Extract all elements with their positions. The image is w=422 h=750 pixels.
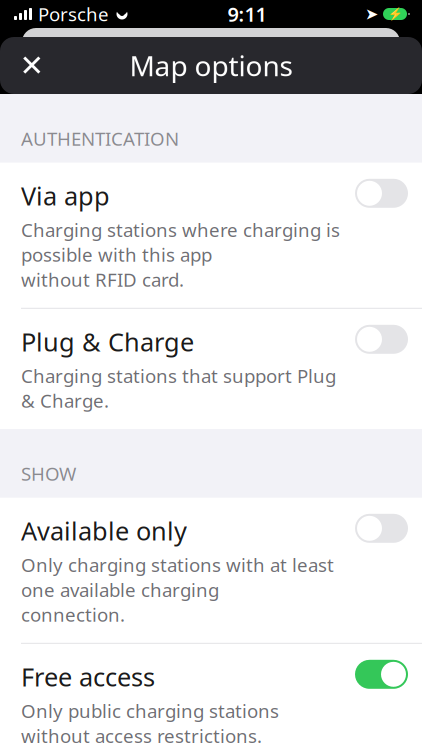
button[interactable]: Free access: [0, 643, 422, 750]
staticText: Only charging stations with at least one…: [21, 552, 334, 627]
button[interactable]: Close: [10, 43, 54, 87]
button[interactable]: Via app: [0, 163, 422, 308]
staticText: Charging stations where charging is poss…: [21, 217, 340, 292]
staticText: Only public charging stations without ac…: [21, 698, 279, 748]
staticText: Free access: [21, 660, 155, 693]
button[interactable]: Plug & Charge: [0, 308, 422, 429]
staticText: ✕: [19, 49, 44, 82]
staticText: Map options: [129, 47, 292, 84]
staticText: Available only: [21, 514, 187, 547]
staticText: AUTHENTICATION: [21, 126, 179, 151]
staticText: Plug & Charge: [21, 325, 194, 358]
button[interactable]: Available only: [0, 498, 422, 643]
staticText: 9:11: [227, 1, 266, 27]
staticText: SHOW: [21, 461, 76, 486]
staticText: Charging stations that support Plug & Ch…: [21, 363, 336, 413]
staticText: Porsche: [38, 2, 109, 26]
staticText: ➤: [365, 5, 378, 23]
staticText: ⚡: [387, 7, 402, 21]
staticText: Via app: [21, 179, 110, 212]
